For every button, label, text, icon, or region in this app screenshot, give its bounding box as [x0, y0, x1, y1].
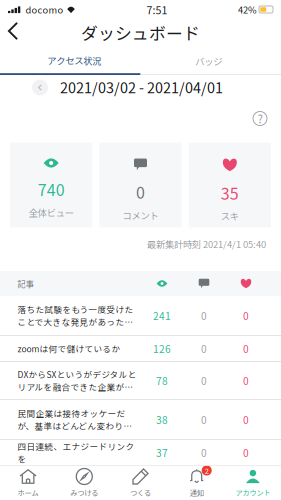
button[interactable]: DXからSXというがデジタルとリアルを融合できた企業が… [0, 362, 281, 399]
staticText: zoomは何で儲けているか [17, 342, 120, 355]
button[interactable]: ホーム [0, 464, 56, 500]
staticText: 35 [221, 181, 239, 204]
staticText: 0 [243, 445, 249, 460]
button[interactable]: 落ちた試験をもう一度受けたことで大きな発見があった… [0, 296, 281, 335]
staticText: ダッシュボード [81, 20, 200, 45]
staticText: 0 [136, 180, 145, 203]
staticText: 2 [205, 465, 209, 476]
staticText: 0 [201, 341, 207, 356]
staticText: 最新集計時刻 2021/4/1 05:40 [147, 237, 266, 251]
staticText: 0 [243, 308, 249, 323]
button[interactable]: つくる [112, 464, 169, 500]
button[interactable]: 2 [169, 464, 225, 500]
staticText: バッジ [195, 54, 222, 68]
staticText: スキ [221, 209, 239, 223]
staticText: 0 [201, 373, 207, 388]
staticText: 0 [243, 341, 249, 356]
staticText: 38 [156, 412, 168, 427]
staticText: 42% [238, 3, 257, 16]
staticText: 7:51 [146, 2, 167, 17]
staticText: つくる [130, 487, 151, 498]
button[interactable]: アカウント [225, 464, 281, 500]
staticText: コメント [122, 208, 158, 222]
staticText: 落ちた試験をもう一度受けたことで大きな発見があった… [17, 303, 133, 328]
staticText: 241 [153, 308, 171, 323]
button[interactable]: バッジ [140, 48, 281, 75]
button[interactable]: Back [0, 19, 26, 48]
staticText: 126 [153, 341, 171, 356]
staticText: 民間企業は接待オッケーだが、基準はどんどん変わりました [17, 407, 140, 432]
staticText: 78 [156, 373, 168, 388]
staticText: 0 [243, 412, 249, 427]
button[interactable]: zoomは何で儲けているか [0, 336, 281, 361]
staticText: 通知 [190, 487, 204, 498]
button[interactable]: アクセス状況 [0, 48, 140, 75]
staticText: docomo [25, 3, 63, 16]
staticText: 0 [201, 308, 207, 323]
staticText: みつける [70, 487, 98, 498]
staticText: DXからSXというがデジタルとリアルを融合できた企業が… [17, 368, 136, 393]
staticText: アカウント [235, 487, 270, 498]
staticText: 0 [243, 373, 249, 388]
staticText: ホーム [18, 487, 39, 498]
button[interactable]: みつける [56, 464, 112, 500]
button[interactable]: 民間企業は接待オッケーだが、基準はどんどん変わりました [0, 400, 281, 439]
staticText: 740 [38, 177, 65, 201]
staticText: 2021/03/02 - 2021/04/01 [60, 77, 223, 97]
staticText: 0 [201, 412, 207, 427]
button[interactable]: Help [253, 111, 267, 125]
staticText: 四日連続、エナジードリンクを [17, 440, 134, 465]
staticText: アクセス状況 [47, 54, 101, 67]
staticText: 全体ビュー [29, 206, 74, 219]
staticText: 0 [201, 445, 207, 460]
button[interactable]: Previous period [32, 79, 48, 95]
button[interactable]: 四日連続、エナジードリンクを [0, 440, 281, 465]
staticText: 記事 [17, 277, 33, 290]
staticText: ? [257, 110, 262, 127]
staticText: 37 [156, 445, 168, 460]
